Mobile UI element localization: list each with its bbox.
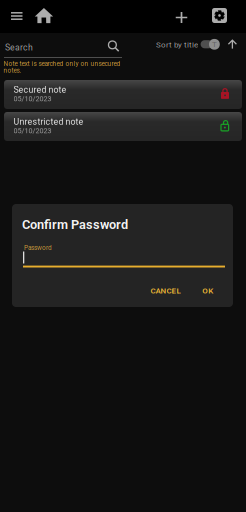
staticText: 05/10/2023 bbox=[14, 127, 52, 135]
button[interactable]: Unrestricted note bbox=[4, 112, 242, 141]
button[interactable]: Secured note bbox=[4, 80, 242, 109]
button[interactable]: Sort ascending bbox=[228, 40, 237, 49]
staticText: Note text is searched only on unsecured bbox=[4, 60, 121, 67]
staticText: OK bbox=[202, 286, 213, 296]
staticText: notes. bbox=[4, 67, 22, 74]
button[interactable]: CANCEL bbox=[150, 286, 180, 296]
staticText: CANCEL bbox=[150, 286, 180, 296]
button[interactable]: Add note bbox=[176, 12, 187, 23]
button[interactable]: Home bbox=[35, 8, 53, 23]
button[interactable]: Menu bbox=[11, 12, 22, 20]
staticText: 05/10/2023 bbox=[14, 95, 52, 103]
button[interactable]: Settings bbox=[212, 8, 227, 23]
staticText: Secured note bbox=[14, 85, 67, 95]
staticText: Sort by title bbox=[156, 40, 198, 49]
staticText: Password bbox=[24, 244, 52, 251]
button[interactable]: OK bbox=[202, 286, 213, 296]
staticText: Unrestricted note bbox=[14, 117, 84, 127]
staticText: Search bbox=[5, 42, 33, 53]
staticText: Confirm Password bbox=[22, 217, 128, 232]
button[interactable]: Search bbox=[108, 41, 119, 51]
staticText: T bbox=[212, 40, 217, 49]
